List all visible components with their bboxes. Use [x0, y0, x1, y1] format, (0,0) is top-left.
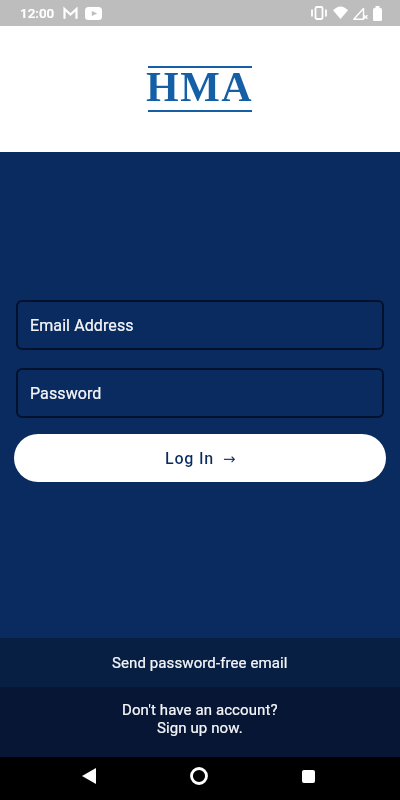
button[interactable] — [77, 764, 101, 788]
staticText: Sign up now. — [157, 719, 243, 737]
staticText: Send password-free email — [112, 654, 288, 672]
staticText: 12:00 — [20, 5, 55, 21]
staticText: Don't have an account? — [122, 701, 278, 719]
staticText: Password — [30, 384, 102, 403]
button[interactable] — [296, 764, 320, 788]
button[interactable]: Send password-free email — [0, 638, 400, 687]
staticText: HMA — [146, 64, 254, 106]
staticText: → — [223, 450, 236, 467]
staticText: Log In — [165, 449, 215, 468]
staticText: Email Address — [30, 316, 134, 335]
button[interactable] — [187, 764, 211, 788]
button[interactable]: Don't have an account? — [0, 687, 400, 757]
button[interactable]: Email Address — [16, 300, 384, 350]
button[interactable]: Password — [16, 368, 384, 418]
button[interactable]: Log In — [14, 434, 386, 482]
